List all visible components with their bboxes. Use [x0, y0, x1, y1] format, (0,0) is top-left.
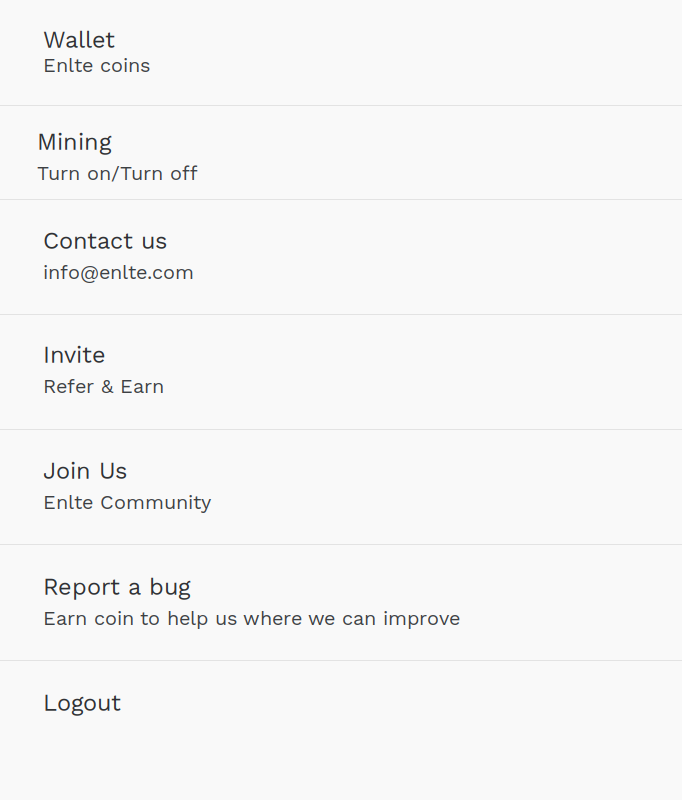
- staticText: Join Us: [43, 457, 127, 484]
- button[interactable]: Contact us: [0, 200, 682, 314]
- button[interactable]: Invite: [0, 315, 682, 429]
- staticText: Invite: [43, 341, 106, 368]
- button[interactable]: Logout: [0, 661, 682, 800]
- button[interactable]: Wallet: [0, 0, 682, 105]
- button[interactable]: Join Us: [0, 430, 682, 544]
- staticText: Turn on/Turn off: [37, 161, 198, 185]
- staticText: Report a bug: [43, 573, 190, 600]
- staticText: Logout: [43, 689, 121, 716]
- staticText: Earn coin to help us where we can improv…: [43, 606, 460, 630]
- staticText: Enlte Community: [43, 490, 211, 514]
- staticText: Wallet: [43, 26, 115, 53]
- staticText: Mining: [37, 128, 111, 155]
- staticText: Refer & Earn: [43, 374, 164, 398]
- staticText: Contact us: [43, 227, 167, 254]
- button[interactable]: Report a bug: [0, 545, 682, 660]
- staticText: Enlte coins: [43, 53, 150, 77]
- staticText: info@enlte.com: [43, 260, 194, 284]
- button[interactable]: Mining: [0, 106, 682, 199]
